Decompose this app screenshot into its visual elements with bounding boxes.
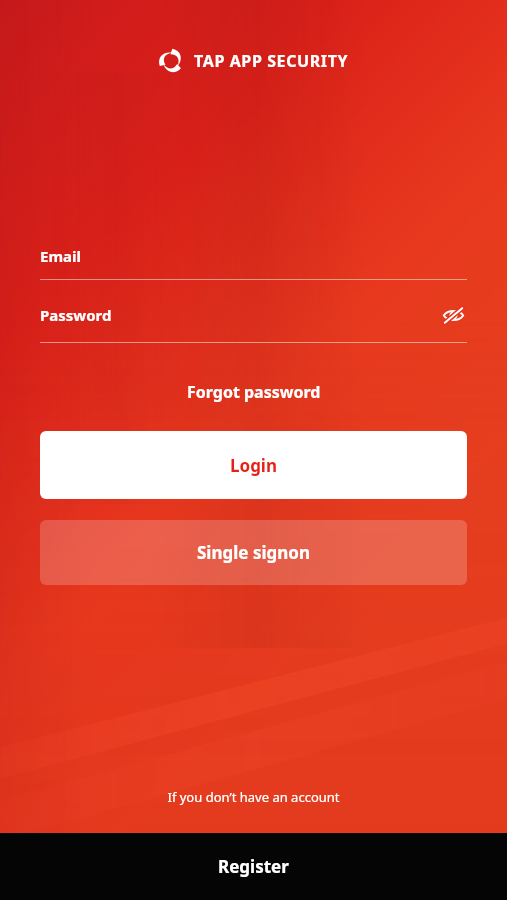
button[interactable]: Password (40, 301, 467, 343)
staticText: Register (218, 855, 289, 878)
button[interactable]: Register (0, 833, 507, 900)
staticText: Email (40, 246, 81, 266)
button[interactable]: Single signon (40, 520, 467, 585)
button[interactable]: Forgot password (0, 375, 507, 409)
staticText: Login (230, 454, 278, 477)
staticText: TAP APP SECURITY (194, 50, 349, 72)
staticText: Password (40, 305, 112, 325)
button[interactable]: Login (40, 431, 467, 499)
staticText: Single signon (197, 541, 310, 564)
staticText: If you don’t have an account (0, 788, 507, 806)
button[interactable]: Email (40, 246, 467, 280)
button[interactable]: Show password (439, 301, 467, 329)
staticText: Forgot password (187, 381, 321, 403)
